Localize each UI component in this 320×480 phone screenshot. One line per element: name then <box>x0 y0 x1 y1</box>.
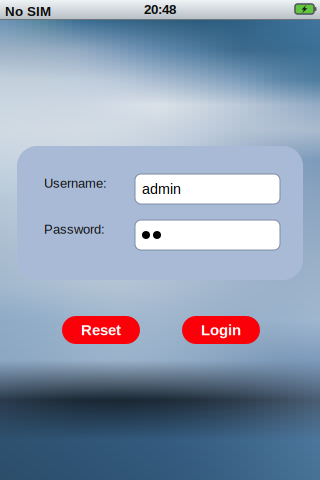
staticText: Reset <box>81 322 121 338</box>
staticText: No SIM <box>5 4 51 19</box>
staticText: admin <box>142 181 181 197</box>
staticText: Username: <box>44 176 107 190</box>
staticText: Login <box>201 322 241 338</box>
staticText: Password: <box>44 222 105 236</box>
button[interactable] <box>135 220 280 250</box>
staticText: 20:48 <box>144 2 176 17</box>
button[interactable]: Login <box>182 316 260 344</box>
button[interactable]: Reset <box>62 316 140 344</box>
button[interactable]: admin <box>135 174 280 204</box>
